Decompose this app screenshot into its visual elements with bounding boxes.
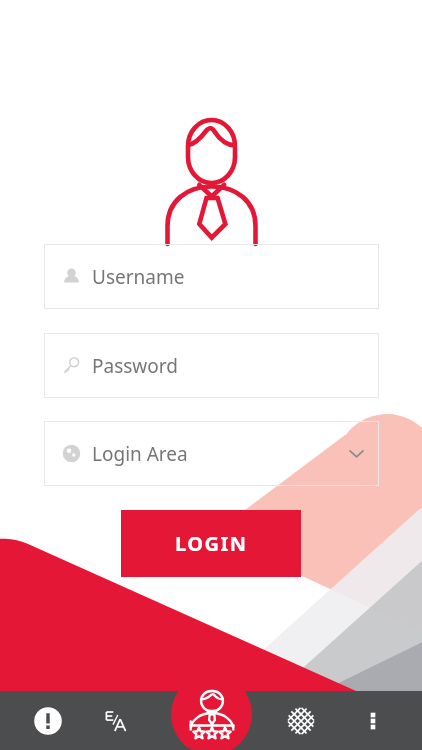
button[interactable]: Username <box>44 244 379 309</box>
button[interactable]: Password <box>44 333 379 398</box>
button[interactable]: Alerts <box>19 691 77 750</box>
staticText: Username <box>92 264 185 290</box>
button[interactable]: Network <box>272 691 330 750</box>
staticText: LOGIN <box>175 530 248 557</box>
button[interactable]: Translate <box>87 691 145 750</box>
button[interactable]: Profile <box>171 674 252 750</box>
button[interactable]: Login Area <box>44 421 379 486</box>
button[interactable]: More options <box>344 691 402 750</box>
button[interactable]: LOGIN <box>121 510 301 577</box>
staticText: Password <box>92 353 178 379</box>
staticText: Login Area <box>92 441 188 467</box>
